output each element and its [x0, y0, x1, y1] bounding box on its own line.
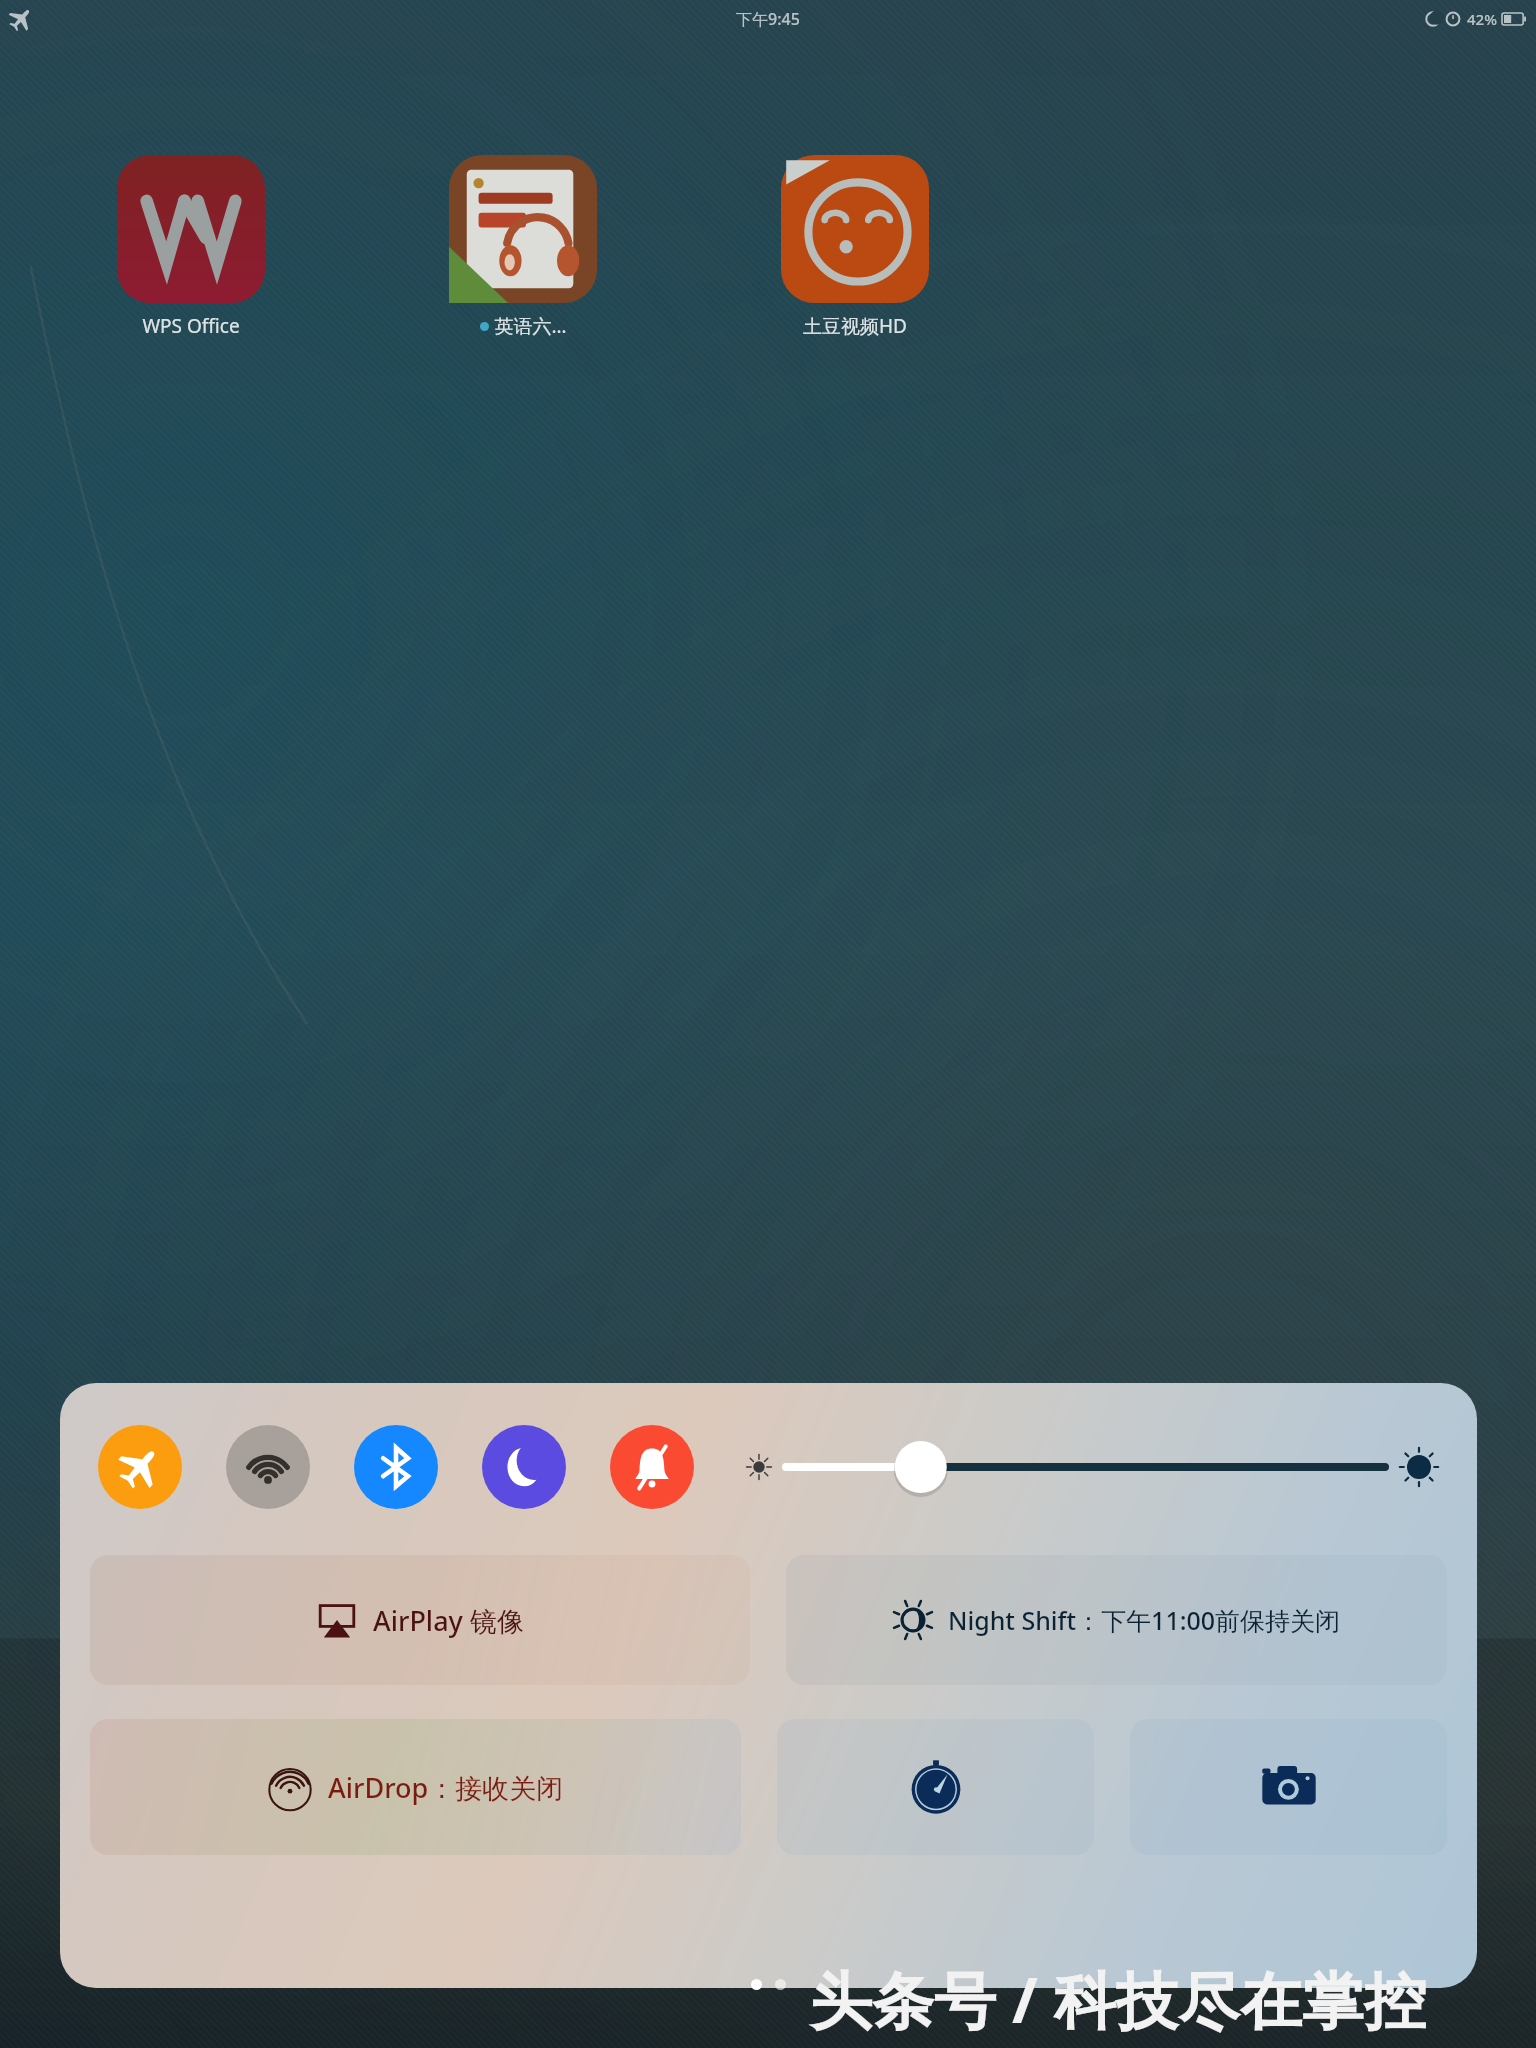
button[interactable]: Bluetooth — [354, 1425, 438, 1509]
staticText: Night Shift：下午11:00前保持关闭 — [948, 1603, 1341, 1637]
staticText: 42% — [1467, 9, 1497, 29]
staticText: AirPlay 镜像 — [373, 1602, 524, 1639]
staticText: WPS Office — [142, 313, 240, 339]
button[interactable]: Do Not Disturb — [482, 1425, 566, 1509]
staticText: 头条号 / 科技尽在掌控 — [810, 1957, 1426, 2042]
button[interactable]: 英语六… — [447, 155, 599, 339]
button[interactable]: Wi-Fi — [226, 1425, 310, 1509]
button[interactable]: Timer — [777, 1719, 1094, 1855]
button[interactable] — [786, 1439, 1385, 1495]
button[interactable]: AirPlay 镜像 — [90, 1555, 750, 1685]
button[interactable]: 土豆视频HD — [779, 155, 931, 339]
button[interactable]: WPS Office — [115, 155, 267, 339]
staticText: 英语六… — [494, 313, 567, 339]
staticText: 下午9:45 — [736, 8, 800, 30]
button[interactable]: Night Shift：下午11:00前保持关闭 — [786, 1555, 1447, 1685]
staticText: 土豆视频HD — [803, 313, 907, 339]
button[interactable]: Airplane mode — [98, 1425, 182, 1509]
button[interactable]: Mute — [610, 1425, 694, 1509]
button[interactable]: AirDrop：接收关闭 — [90, 1719, 741, 1855]
staticText: AirDrop：接收关闭 — [328, 1769, 564, 1806]
button[interactable]: Camera — [1130, 1719, 1447, 1855]
